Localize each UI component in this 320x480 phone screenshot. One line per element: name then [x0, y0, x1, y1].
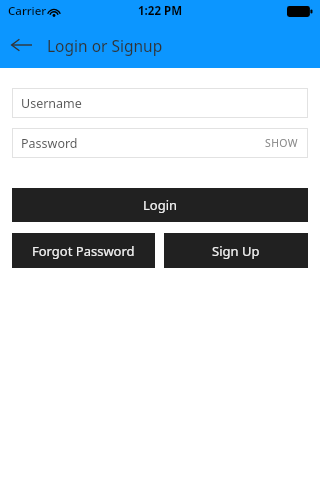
staticText: Login or Signup — [47, 35, 163, 56]
staticText: Carrier — [8, 3, 47, 19]
button[interactable]: Password — [12, 128, 308, 158]
button[interactable]: Sign Up — [164, 233, 308, 268]
staticText: Password — [21, 135, 78, 152]
staticText: 1:22 PM — [138, 3, 182, 19]
button[interactable]: Back — [0, 24, 42, 66]
button[interactable]: Login — [12, 188, 308, 222]
button[interactable]: Username — [12, 88, 308, 118]
staticText: Username — [21, 95, 82, 112]
button[interactable]: Forgot Password — [12, 233, 155, 268]
staticText: SHOW — [265, 136, 299, 150]
staticText: Sign Up — [212, 242, 260, 260]
staticText: Forgot Password — [32, 242, 135, 260]
staticText: Login — [143, 196, 178, 214]
